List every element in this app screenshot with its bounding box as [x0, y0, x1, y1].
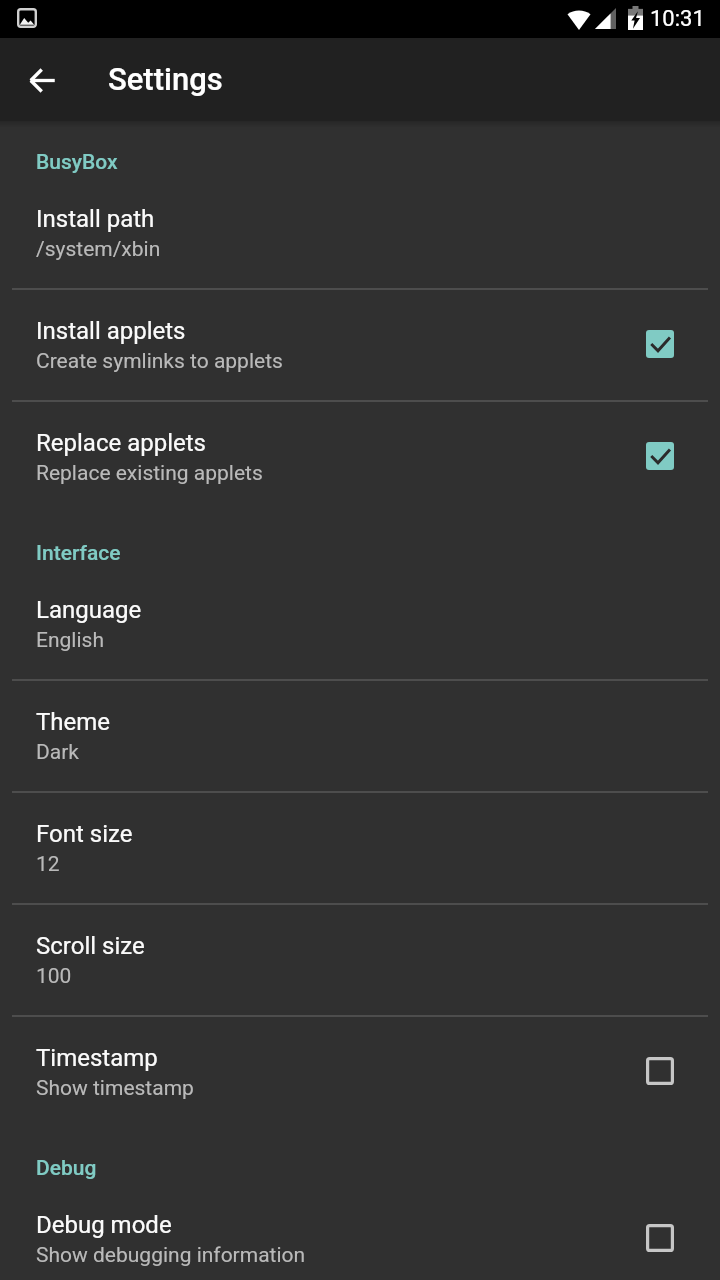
button[interactable]: Timestamp: [0, 1017, 720, 1129]
staticText: 100: [36, 964, 72, 989]
staticText: Font size: [36, 820, 133, 848]
staticText: English: [36, 628, 104, 653]
button[interactable]: Scroll size: [0, 905, 720, 1017]
button[interactable]: Debug mode: [0, 1184, 720, 1280]
staticText: Install path: [36, 205, 155, 233]
staticText: Debug mode: [36, 1211, 172, 1239]
button[interactable]: Replace applets: [0, 402, 720, 514]
staticText: Dark: [36, 740, 79, 765]
staticText: Language: [36, 596, 142, 624]
staticText: Replace existing applets: [36, 461, 263, 486]
staticText: Settings: [108, 61, 223, 97]
staticText: Interface: [36, 541, 121, 566]
staticText: Show debugging information: [36, 1243, 306, 1268]
staticText: Timestamp: [36, 1044, 158, 1072]
staticText: Show timestamp: [36, 1076, 194, 1101]
button[interactable]: Install applets: [0, 290, 720, 402]
staticText: BusyBox: [36, 150, 118, 175]
button[interactable]: Language: [0, 569, 720, 681]
button[interactable]: Disabled, toggle on: [636, 1214, 684, 1262]
staticText: /system/xbin: [36, 237, 161, 262]
button[interactable]: Disabled, toggle on: [636, 1047, 684, 1095]
button[interactable]: Font size: [0, 793, 720, 905]
staticText: Theme: [36, 708, 111, 736]
button[interactable]: Enabled, toggle off: [636, 320, 684, 368]
button[interactable]: Theme: [0, 681, 720, 793]
staticText: 10:31: [650, 6, 705, 32]
staticText: Install applets: [36, 317, 186, 345]
staticText: Scroll size: [36, 932, 145, 960]
other: Screenshot captured: [17, 8, 37, 28]
staticText: Debug: [36, 1156, 97, 1181]
button[interactable]: Enabled, toggle off: [636, 432, 684, 480]
staticText: 12: [36, 852, 60, 877]
staticText: Replace applets: [36, 429, 206, 457]
button[interactable]: Navigate up: [18, 56, 66, 104]
button[interactable]: Install path: [0, 178, 720, 290]
staticText: Create symlinks to applets: [36, 349, 283, 374]
